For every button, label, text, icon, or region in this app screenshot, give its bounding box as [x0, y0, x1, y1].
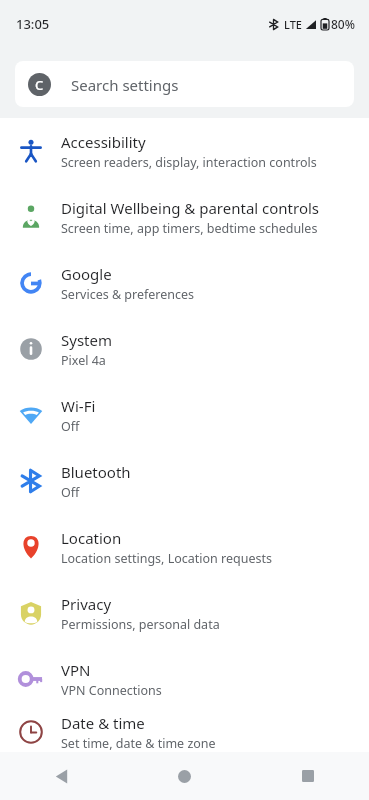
button[interactable]: System	[0, 316, 369, 382]
button[interactable]: Date & time	[0, 712, 369, 752]
button[interactable]: Privacy	[0, 580, 369, 646]
button[interactable]: Location	[0, 514, 369, 580]
staticText: 13:05	[16, 15, 50, 33]
staticText: VPN	[61, 660, 91, 680]
staticText: Screen time, app timers, bedtime schedul…	[61, 220, 318, 237]
staticText: Set time, date & time zone	[61, 735, 216, 752]
button[interactable]: Back	[0, 752, 123, 800]
staticText: Bluetooth	[61, 462, 131, 482]
staticText: Location	[61, 528, 122, 548]
staticText: 80%	[331, 16, 355, 32]
button[interactable]: Accessibility	[0, 118, 369, 184]
button[interactable]: Recent apps	[246, 752, 369, 800]
button[interactable]: Home	[123, 752, 246, 800]
staticText: Screen readers, display, interaction con…	[61, 154, 317, 171]
staticText: C	[35, 76, 44, 94]
staticText: Digital Wellbeing & parental controls	[61, 198, 320, 218]
staticText: Off	[61, 418, 80, 435]
staticText: Off	[61, 484, 80, 501]
button[interactable]: VPN	[0, 646, 369, 712]
staticText: Accessibility	[61, 132, 146, 152]
staticText: Google	[61, 264, 112, 284]
staticText: Privacy	[61, 594, 112, 614]
button[interactable]: C	[15, 61, 354, 107]
staticText: VPN Connections	[61, 682, 162, 699]
staticText: LTE	[284, 17, 302, 32]
staticText: Permissions, personal data	[61, 616, 220, 633]
button[interactable]: Wi-Fi	[0, 382, 369, 448]
button[interactable]: Google	[0, 250, 369, 316]
staticText: Services & preferences	[61, 286, 195, 303]
staticText: Search settings	[71, 75, 179, 95]
button[interactable]: Digital Wellbeing & parental controls	[0, 184, 369, 250]
staticText: Wi-Fi	[61, 396, 96, 416]
staticText: Location settings, Location requests	[61, 550, 273, 567]
staticText: System	[61, 330, 112, 350]
button[interactable]: Bluetooth	[0, 448, 369, 514]
staticText: Date & time	[61, 713, 145, 733]
staticText: Pixel 4a	[61, 352, 106, 369]
